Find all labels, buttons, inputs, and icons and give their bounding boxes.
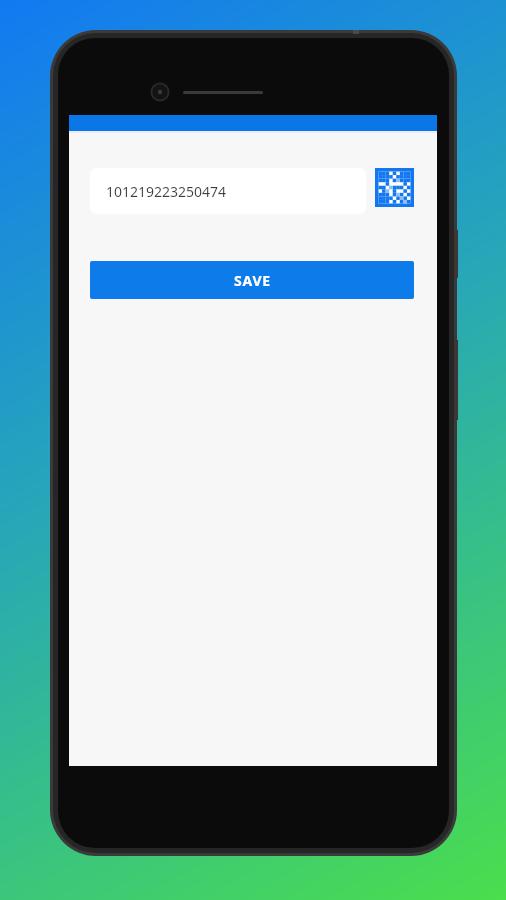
staticText: 101219223250474: [106, 182, 227, 201]
button[interactable]: 101219223250474: [90, 168, 366, 214]
staticText: SAVE: [234, 271, 271, 290]
button[interactable]: Scan QR code: [375, 168, 414, 207]
button[interactable]: SAVE: [90, 261, 414, 299]
